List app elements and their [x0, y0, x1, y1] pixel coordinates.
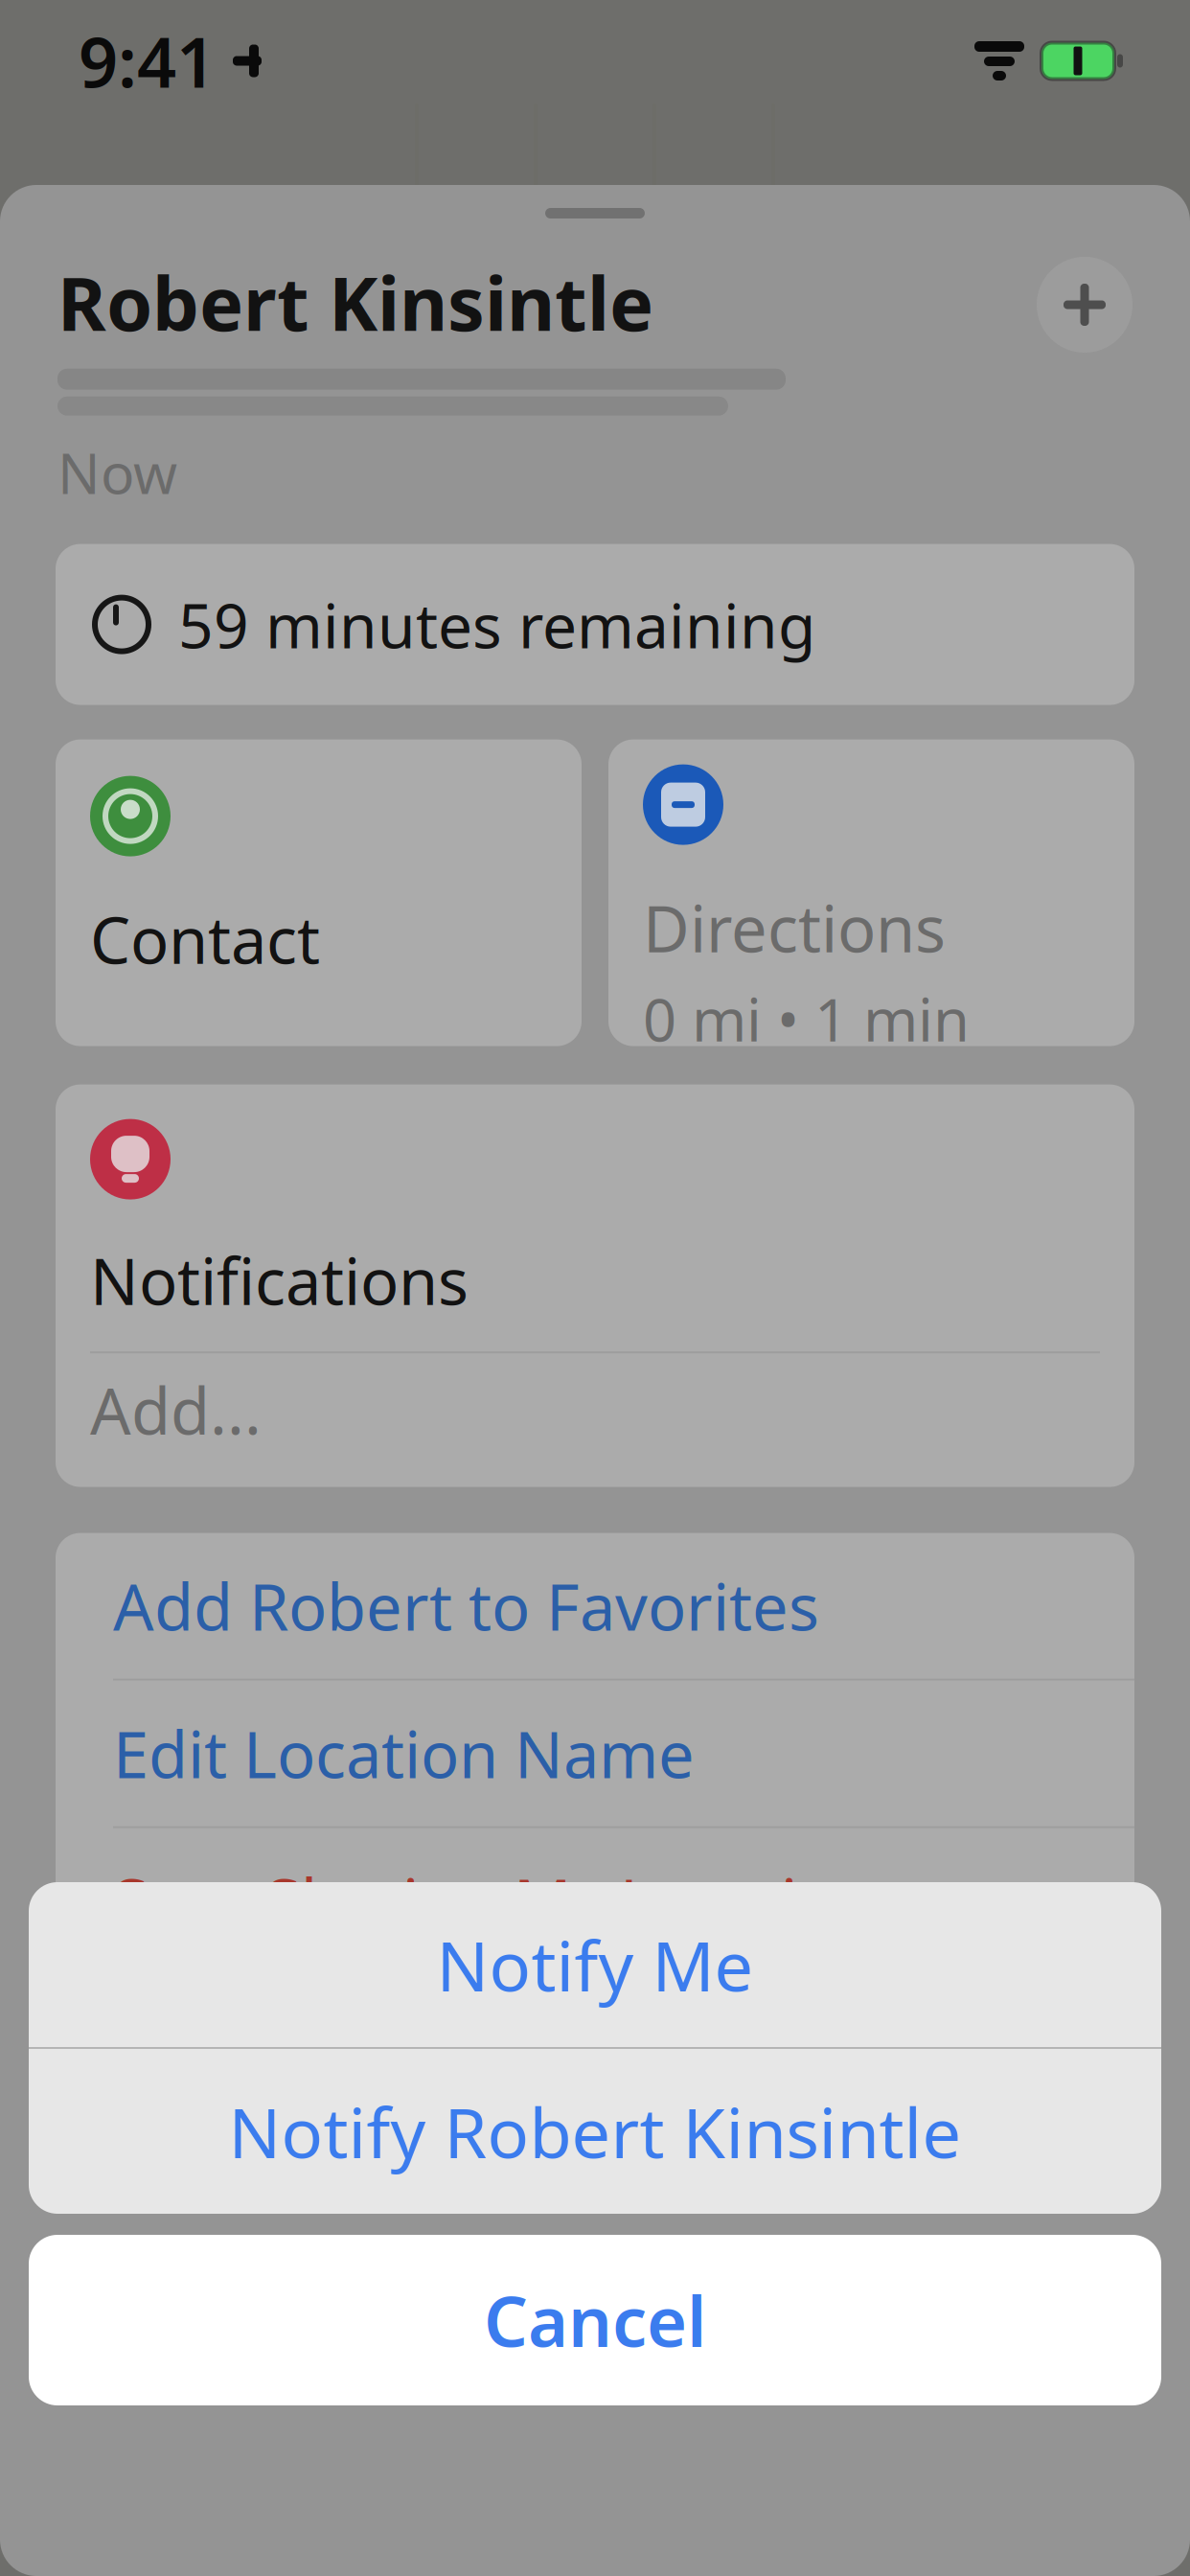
staticText: 9:41	[79, 15, 216, 107]
button[interactable]: Notify Robert Kinsintle	[29, 2049, 1161, 2214]
button[interactable]: Cancel	[29, 2235, 1161, 2405]
button[interactable]: Stop Sharing My Location	[56, 1828, 1134, 1974]
staticText: Notifications	[90, 1238, 469, 1323]
staticText: Stop Sharing My Location	[113, 1858, 875, 1943]
button[interactable]: Contact	[56, 739, 582, 1046]
staticText: Cancel	[484, 2274, 706, 2366]
staticText: 0 mi • 1 min	[643, 980, 970, 1058]
button[interactable]: Add Robert to Favorites	[56, 1533, 1134, 1679]
staticText: Robert Kinsintle	[57, 253, 653, 351]
staticText: Notify Me	[436, 1919, 754, 2010]
button[interactable]: Directions	[608, 739, 1134, 1046]
staticText: Add...	[90, 1367, 262, 1452]
button[interactable]: Edit Location Name	[56, 1681, 1134, 1826]
staticText: Directions	[643, 885, 946, 970]
button[interactable]: Close	[1035, 255, 1134, 355]
staticText: Contact	[90, 897, 320, 981]
button[interactable]: Add...	[90, 1353, 1100, 1466]
staticText: Add Robert to Favorites	[113, 1563, 819, 1648]
button[interactable]: Notify Me	[29, 1882, 1161, 2047]
staticText: Edit Location Name	[113, 1711, 695, 1796]
staticText: Now	[57, 435, 177, 509]
staticText: 59 minutes remaining	[178, 584, 815, 665]
staticText: Notify Robert Kinsintle	[229, 2086, 961, 2177]
